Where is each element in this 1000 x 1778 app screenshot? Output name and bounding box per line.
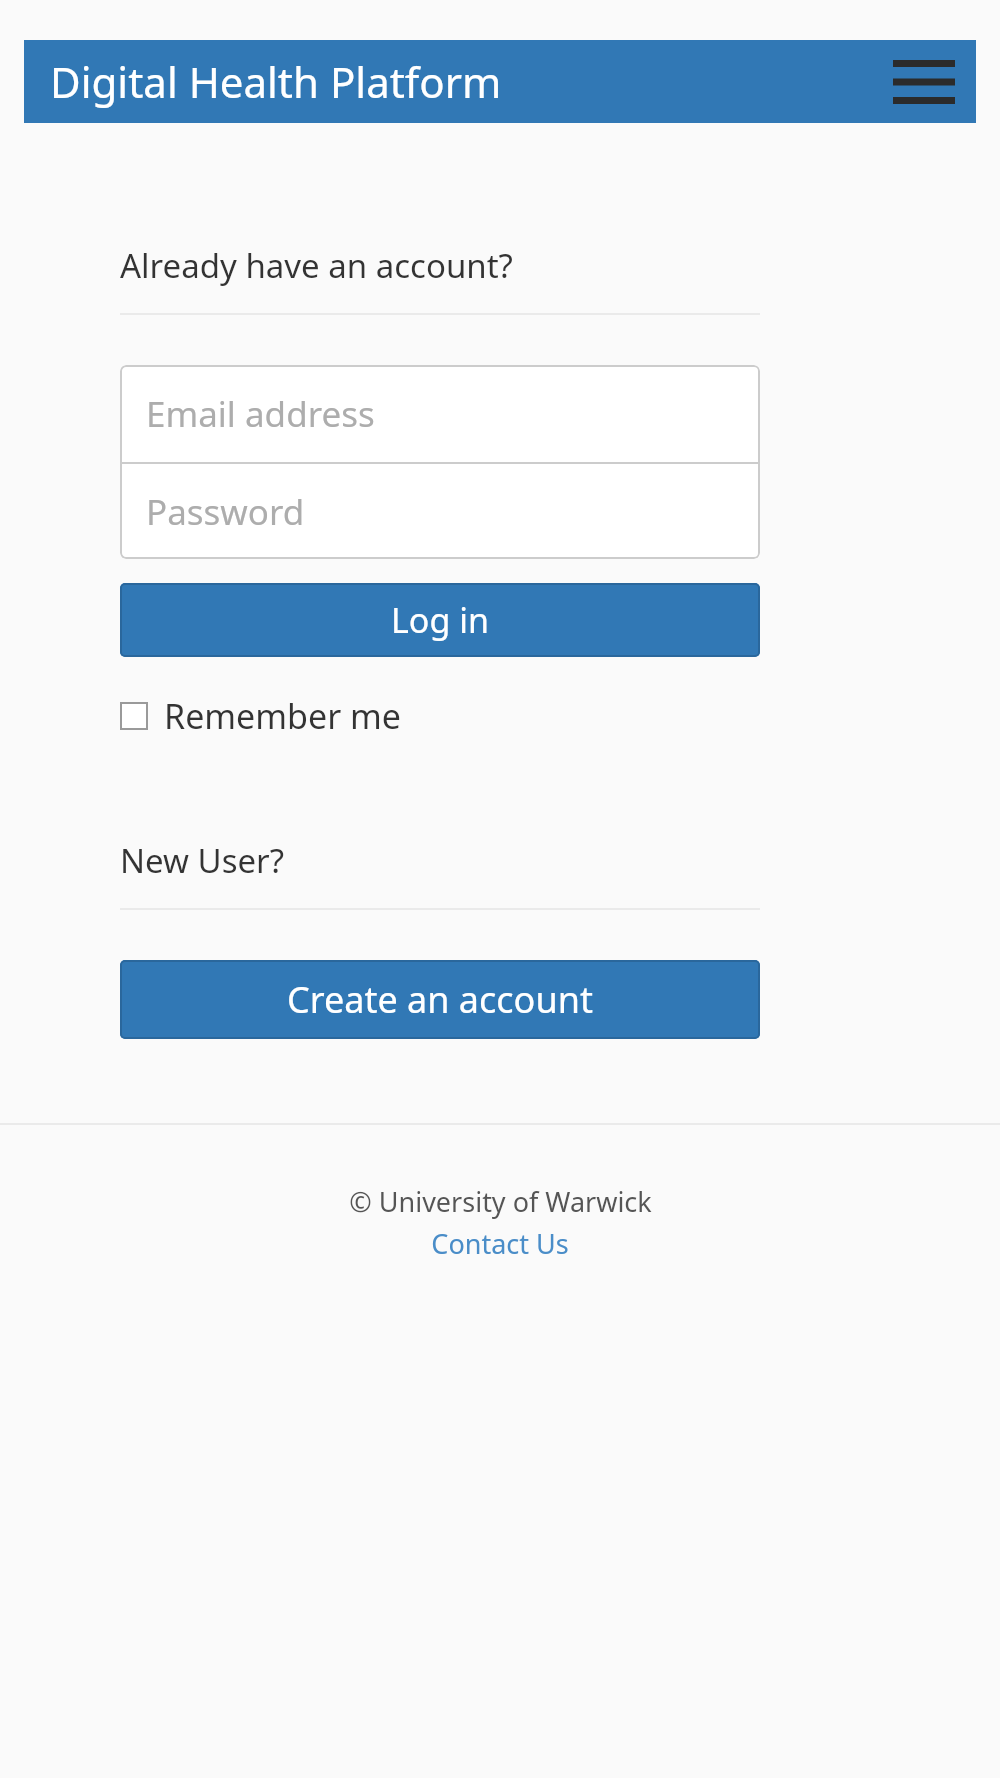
staticText: Create an account xyxy=(287,975,593,1024)
staticText: New User? xyxy=(120,838,285,883)
button[interactable]: Email address xyxy=(120,365,760,462)
staticText: Remember me xyxy=(164,693,402,739)
button[interactable]: Create an account xyxy=(120,960,760,1039)
button[interactable]: Password xyxy=(120,464,760,559)
button[interactable]: Remember me xyxy=(120,689,402,743)
button[interactable]: Menu xyxy=(893,57,955,107)
staticText: Email address xyxy=(146,390,375,438)
staticText: Contact Us xyxy=(431,1225,569,1262)
staticText: Password xyxy=(146,488,305,536)
button[interactable]: Contact Us xyxy=(431,1225,569,1262)
staticText: Already have an account? xyxy=(120,243,513,288)
button[interactable]: Log in xyxy=(120,583,760,657)
staticText: © University of Warwick xyxy=(349,1183,652,1220)
button[interactable]: Digital Health Platform xyxy=(24,40,976,123)
staticText: Log in xyxy=(391,597,489,643)
staticText: Digital Health Platform xyxy=(50,53,502,110)
